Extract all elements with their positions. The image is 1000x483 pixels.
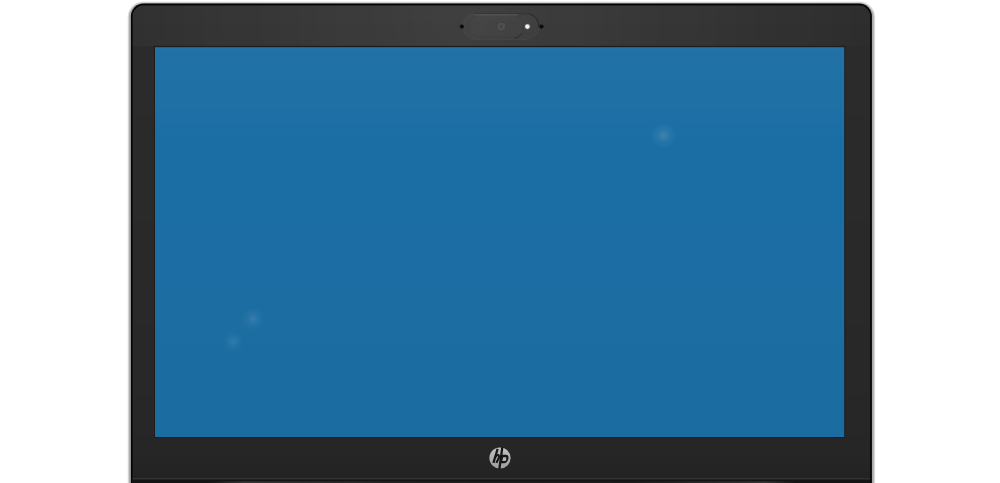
button[interactable]: HP laptop with blue screen: [0, 0, 1000, 483]
